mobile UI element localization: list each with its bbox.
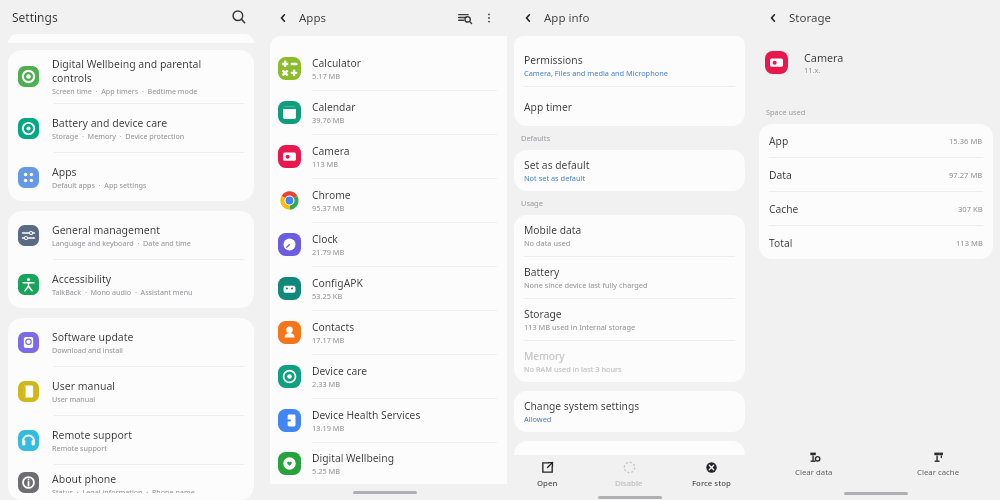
button[interactable]: Software update — [8, 318, 254, 366]
staticText: 17.17 MB — [312, 335, 345, 345]
button[interactable]: Storage — [514, 299, 745, 340]
button[interactable]: Contacts — [270, 311, 507, 354]
button[interactable]: Back — [272, 7, 294, 29]
staticText: About phone — [52, 472, 117, 486]
button[interactable]: General management — [8, 211, 254, 259]
button[interactable]: App — [759, 124, 993, 157]
staticText: Clear data — [795, 467, 833, 478]
button[interactable]: Sort and search — [455, 8, 475, 28]
button[interactable]: Accessibility — [8, 260, 254, 308]
staticText: Apps — [299, 10, 327, 26]
staticText: User manual — [52, 379, 115, 393]
button[interactable]: Device Health Services — [270, 399, 507, 442]
staticText: Camera — [804, 50, 844, 65]
button[interactable]: Mobile data — [514, 215, 745, 256]
button[interactable]: About phone — [8, 465, 254, 500]
button[interactable]: Clock — [270, 223, 507, 266]
staticText: General management — [52, 223, 160, 237]
staticText: Software update — [52, 330, 134, 344]
staticText: None since device last fully charged — [524, 280, 648, 290]
staticText: Remote support — [52, 443, 107, 453]
button[interactable]: Device care — [270, 355, 507, 398]
staticText: Mobile data — [524, 223, 582, 237]
staticText: App info — [544, 10, 590, 26]
staticText: Total — [769, 236, 793, 250]
staticText: Screen time · App timers · Bedtime mode — [52, 86, 198, 96]
button[interactable]: Digital Wellbeing and parental controls — [8, 50, 254, 103]
staticText: Default apps · App settings — [52, 180, 147, 190]
staticText: 11.x. — [804, 65, 821, 75]
staticText: Calendar — [312, 100, 356, 114]
button[interactable]: Disable — [588, 455, 670, 495]
staticText: No data used — [524, 238, 571, 248]
staticText: Set as default — [524, 158, 590, 172]
staticText: Camera — [312, 144, 350, 158]
staticText: 307 KB — [958, 204, 983, 214]
button[interactable]: Apps — [8, 153, 254, 201]
button[interactable]: Remote support — [8, 416, 254, 464]
staticText: Apps — [52, 165, 77, 179]
staticText: 113 MB — [312, 159, 339, 169]
staticText: Contacts — [312, 320, 355, 334]
staticText: Clear cache — [917, 467, 960, 478]
button[interactable]: Search — [228, 6, 250, 28]
staticText: Defaults — [521, 133, 550, 143]
staticText: Change system settings — [524, 399, 640, 413]
staticText: 21.79 MB — [312, 247, 345, 257]
staticText: Digital Wellbeing and parental controls — [52, 57, 202, 85]
staticText: Language and keyboard · Date and time — [52, 238, 191, 248]
button[interactable]: Change system settings — [514, 391, 745, 432]
staticText: App timer — [524, 100, 572, 114]
staticText: Disable — [615, 478, 643, 489]
button[interactable]: Clear cache — [913, 446, 964, 482]
staticText: Settings — [12, 9, 58, 25]
button[interactable]: Battery — [514, 257, 745, 298]
button[interactable]: Permissions — [514, 45, 745, 86]
button[interactable]: Memory — [514, 341, 745, 382]
staticText: Open — [537, 478, 558, 489]
button[interactable]: Total — [759, 226, 993, 259]
staticText: Device care — [312, 364, 368, 378]
staticText: User manual — [52, 394, 96, 404]
staticText: Digital Wellbeing — [312, 451, 394, 465]
staticText: ConfigAPK — [312, 276, 363, 290]
staticText: Storage — [524, 307, 562, 321]
staticText: Calculator — [312, 56, 361, 70]
staticText: App — [769, 134, 789, 148]
button[interactable]: Set as default — [514, 150, 745, 191]
button[interactable]: More options — [481, 10, 497, 26]
button[interactable]: User manual — [8, 367, 254, 415]
button[interactable]: Force stop — [670, 455, 752, 495]
button[interactable]: Chrome — [270, 179, 507, 222]
staticText: Allowed — [524, 414, 552, 424]
staticText: 113 MB — [956, 238, 983, 248]
staticText: 97.27 MB — [949, 170, 983, 180]
button[interactable]: App timer — [514, 87, 745, 126]
staticText: 15.36 MB — [949, 136, 983, 146]
button[interactable]: Back — [762, 7, 784, 29]
button[interactable]: Clear data — [791, 446, 837, 482]
staticText: 5.17 MB — [312, 71, 341, 81]
staticText: Battery and device care — [52, 116, 168, 130]
staticText: Force stop — [692, 478, 731, 489]
button[interactable]: Back — [517, 7, 539, 29]
staticText: Battery — [524, 265, 560, 279]
button[interactable]: Battery and device care — [8, 104, 254, 152]
staticText: 39.76 MB — [312, 115, 345, 125]
button[interactable]: Digital Wellbeing — [270, 443, 507, 484]
staticText: Data — [769, 168, 792, 182]
staticText: Accessibility — [52, 272, 112, 286]
button[interactable]: ConfigAPK — [270, 267, 507, 310]
button[interactable]: Calculator — [270, 47, 507, 90]
staticText: 53.25 KB — [312, 291, 343, 301]
staticText: Usage — [521, 198, 543, 208]
button[interactable]: Camera — [270, 135, 507, 178]
button[interactable]: Data — [759, 158, 993, 191]
button[interactable]: Open — [507, 455, 588, 495]
button[interactable]: Calendar — [270, 91, 507, 134]
staticText: 2.33 MB — [312, 379, 341, 389]
staticText: Cache — [769, 202, 799, 216]
button[interactable]: Cache — [759, 192, 993, 225]
staticText: Status · Legal information · Phone name — [52, 487, 195, 493]
staticText: Camera, Files and media and Microphone — [524, 68, 668, 78]
